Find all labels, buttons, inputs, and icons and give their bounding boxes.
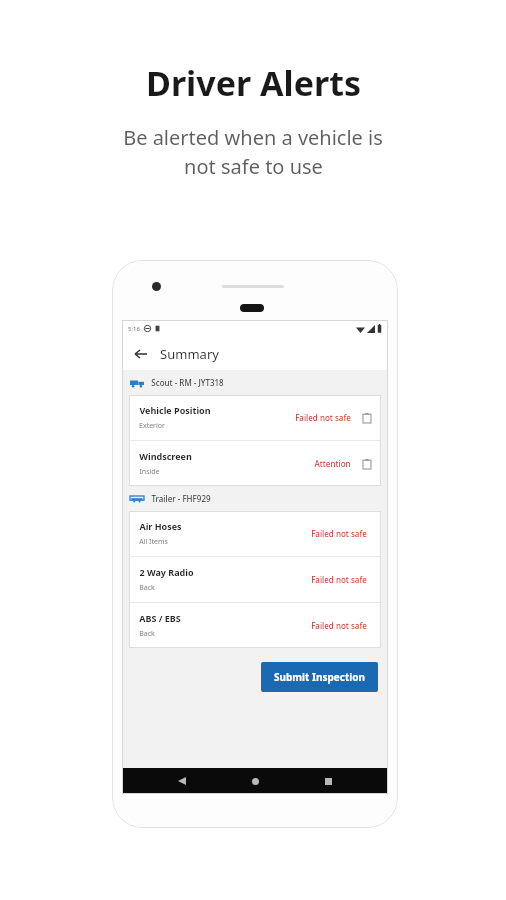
staticText: not safe to use — [184, 153, 323, 180]
staticText: 5:16 — [128, 325, 140, 333]
staticText: Exterior — [139, 421, 165, 431]
staticText: Trailer - FHF929 — [151, 493, 211, 504]
staticText: Failed not safe — [311, 620, 367, 631]
staticText: Failed not safe — [311, 574, 367, 585]
staticText: Back — [139, 629, 155, 639]
button[interactable]: Air Hoses — [129, 511, 381, 556]
staticText: 2 Way Radio — [139, 566, 194, 578]
button[interactable]: Recent apps — [315, 768, 341, 794]
staticText: Failed not safe — [311, 528, 367, 539]
staticText: Air Hoses — [139, 520, 182, 532]
button[interactable]: Submit Inspection — [261, 662, 378, 692]
button[interactable]: ABS / EBS — [129, 603, 381, 648]
button[interactable]: View defect report — [360, 457, 373, 470]
staticText: Inside — [139, 467, 160, 477]
staticText: Failed not safe — [295, 412, 351, 423]
staticText: Attention — [314, 458, 351, 469]
staticText: Summary — [160, 345, 219, 363]
button[interactable]: Windscreen — [129, 441, 381, 486]
staticText: All Items — [139, 537, 168, 547]
button[interactable]: Home — [242, 768, 268, 794]
button[interactable]: Back — [131, 344, 151, 364]
staticText: Back — [139, 583, 155, 593]
staticText: Submit Inspection — [274, 670, 365, 684]
staticText: Windscreen — [139, 450, 192, 462]
button[interactable]: Vehicle Position — [129, 395, 381, 440]
staticText: ABS / EBS — [139, 612, 181, 624]
button[interactable]: View defect report — [360, 411, 373, 424]
staticText: Driver Alerts — [146, 60, 361, 106]
button[interactable]: 2 Way Radio — [129, 557, 381, 602]
staticText: Vehicle Position — [139, 404, 211, 416]
staticText: Be alerted when a vehicle is — [123, 124, 383, 151]
button[interactable]: Back — [169, 768, 195, 794]
staticText: Scout - RM - JYT318 — [151, 377, 224, 388]
